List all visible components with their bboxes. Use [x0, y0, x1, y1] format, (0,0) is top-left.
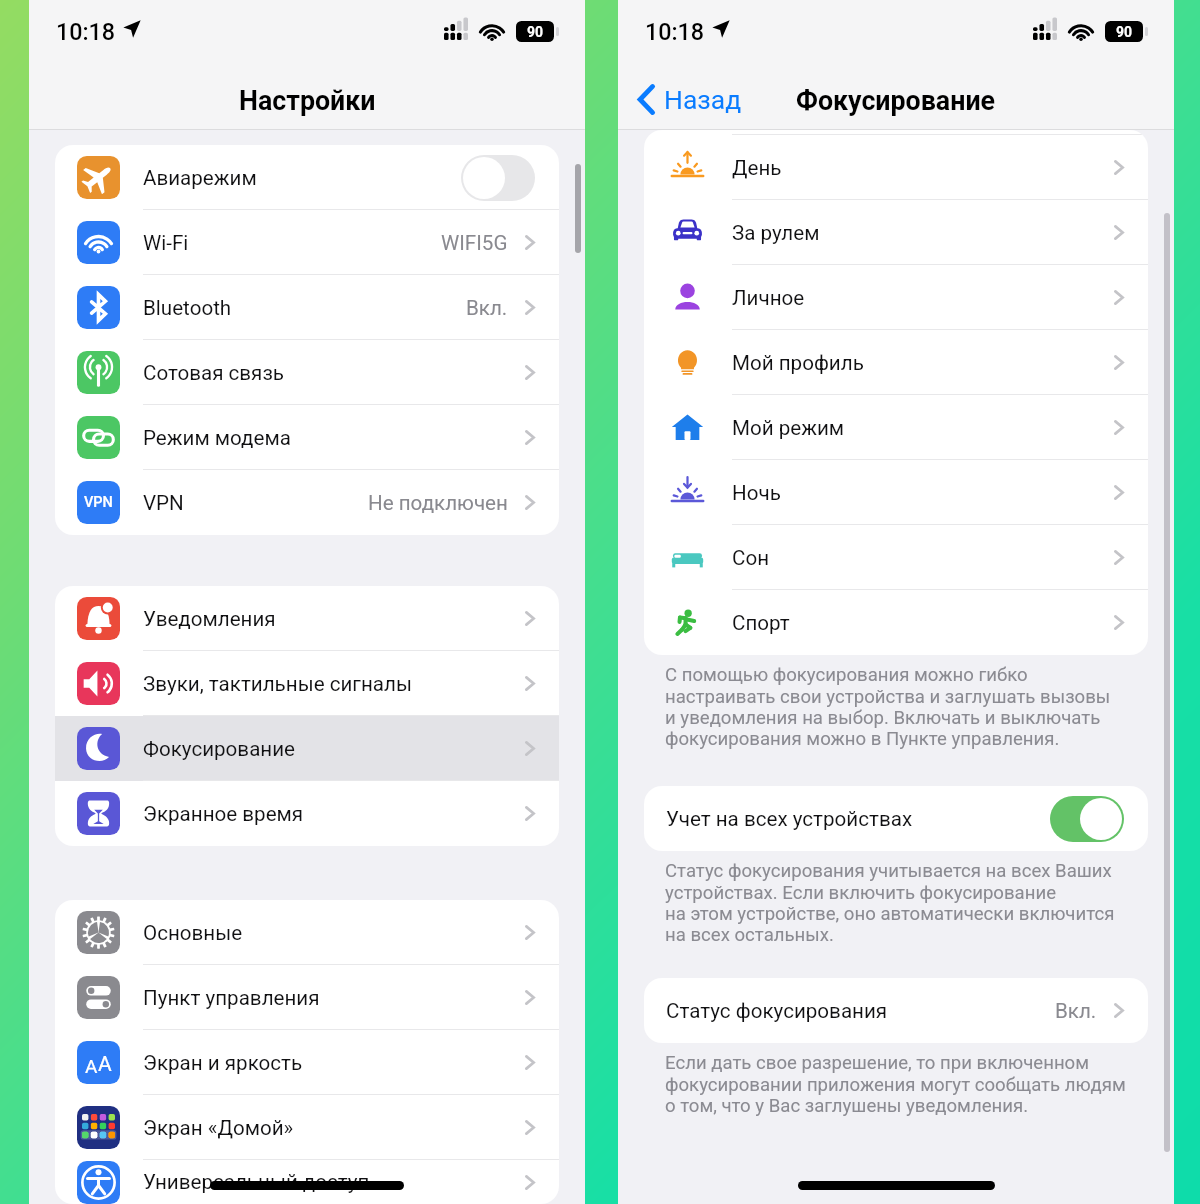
button[interactable]: Уведомления: [55, 586, 559, 651]
staticText: 90: [1116, 24, 1133, 40]
staticText: VPN: [84, 494, 113, 511]
button[interactable]: Сотовая связь: [55, 340, 559, 405]
button[interactable]: A: [55, 1030, 559, 1095]
staticText: Ночь: [732, 481, 781, 505]
button[interactable]: Учет на всех устройствах: [644, 786, 1148, 851]
staticText: Настройки: [239, 85, 376, 116]
button[interactable]: День: [644, 135, 1148, 200]
staticText: Звуки, тактильные сигналы: [143, 672, 412, 696]
staticText: Мой режим: [732, 416, 845, 440]
staticText: Вкл.: [1055, 999, 1097, 1023]
staticText: A: [85, 1055, 98, 1077]
staticText: Спорт: [732, 611, 790, 635]
button[interactable]: VPN: [55, 470, 559, 535]
staticText: Вкл.: [466, 296, 508, 320]
button[interactable]: Статус фокусирования: [644, 978, 1148, 1043]
staticText: Учет на всех устройствах: [666, 807, 913, 831]
staticText: Экран и яркость: [143, 1051, 303, 1075]
staticText: День: [732, 156, 782, 180]
button[interactable]: Выключено: [461, 155, 535, 201]
button[interactable]: Сон: [644, 525, 1148, 590]
staticText: Если дать свое разрешение, то при включе…: [665, 1052, 1126, 1116]
staticText: Назад: [664, 84, 742, 115]
button[interactable]: Личное: [644, 265, 1148, 330]
staticText: Bluetooth: [143, 296, 232, 320]
staticText: Фокусирование: [796, 85, 996, 116]
staticText: VPN: [143, 491, 184, 515]
button[interactable]: Экран «Домой»: [55, 1095, 559, 1160]
staticText: 10:18: [645, 18, 705, 45]
staticText: Wi-Fi: [143, 231, 189, 255]
staticText: Статус фокусирования учитывается на всех…: [665, 860, 1115, 945]
staticText: Не подключен: [368, 491, 508, 515]
staticText: WIFI5G: [441, 231, 508, 255]
staticText: Режим модема: [143, 426, 291, 450]
button[interactable]: За рулем: [644, 200, 1148, 265]
staticText: Статус фокусирования: [666, 999, 888, 1023]
staticText: Экранное время: [143, 802, 304, 826]
button[interactable]: Универсальный доступ: [55, 1160, 559, 1204]
staticText: Уведомления: [143, 607, 276, 631]
button[interactable]: Включено: [1050, 796, 1124, 842]
staticText: Основные: [143, 921, 243, 945]
staticText: Мой профиль: [732, 351, 864, 375]
button[interactable]: Звуки, тактильные сигналы: [55, 651, 559, 716]
staticText: За рулем: [732, 221, 820, 245]
button[interactable]: Фокусирование: [55, 716, 559, 781]
staticText: С помощью фокусирования можно гибко наст…: [665, 664, 1111, 749]
button[interactable]: Экранное время: [55, 781, 559, 846]
button[interactable]: Мой профиль: [644, 330, 1148, 395]
button[interactable]: Авиарежим: [55, 145, 559, 210]
button[interactable]: Ночь: [644, 460, 1148, 525]
staticText: Авиарежим: [143, 166, 257, 190]
staticText: A: [98, 1052, 112, 1077]
button[interactable]: Мой режим: [644, 395, 1148, 460]
staticText: 10:18: [56, 18, 116, 45]
button[interactable]: Основные: [55, 900, 559, 965]
staticText: Экран «Домой»: [143, 1116, 294, 1140]
button[interactable]: Wi-Fi: [55, 210, 559, 275]
button[interactable]: Назад: [632, 79, 748, 120]
button[interactable]: Пункт управления: [55, 965, 559, 1030]
button[interactable]: Режим модема: [55, 405, 559, 470]
button[interactable]: Спорт: [644, 590, 1148, 655]
staticText: Личное: [732, 286, 805, 310]
button[interactable]: Bluetooth: [55, 275, 559, 340]
staticText: Сон: [732, 546, 770, 570]
staticText: Сотовая связь: [143, 361, 285, 385]
staticText: Универсальный доступ: [143, 1170, 370, 1194]
staticText: Пункт управления: [143, 986, 320, 1010]
staticText: Фокусирование: [143, 737, 296, 761]
staticText: 90: [527, 24, 544, 40]
